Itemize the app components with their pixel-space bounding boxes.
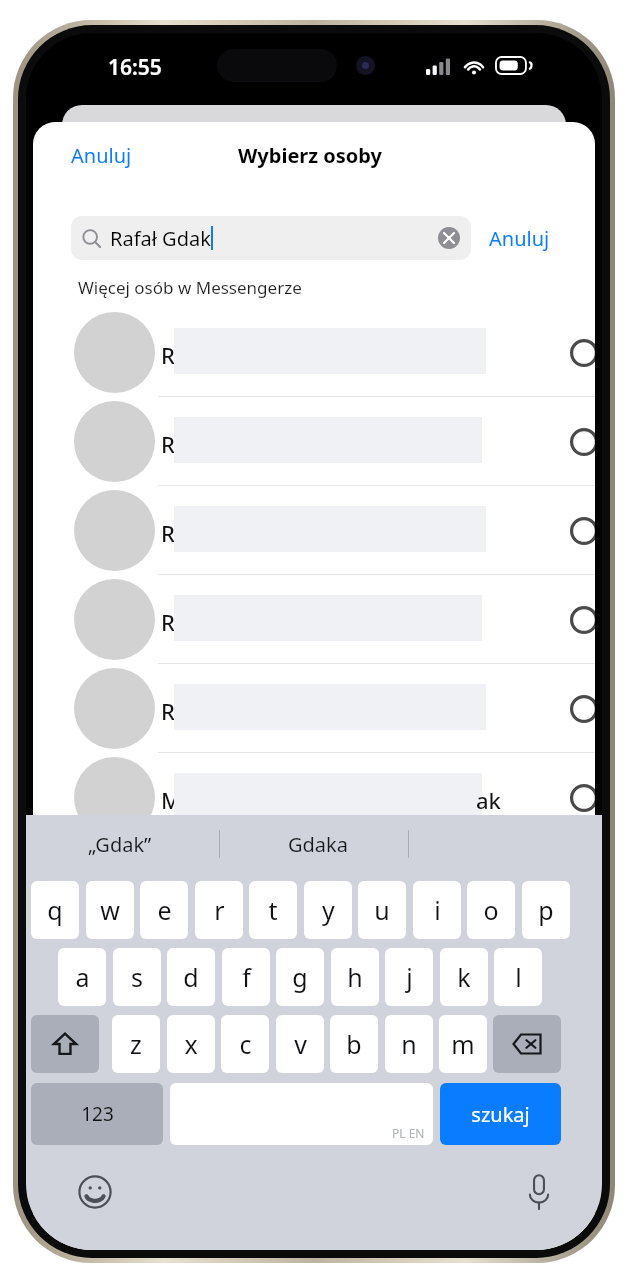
staticText: g (292, 960, 308, 994)
button[interactable]: k (440, 948, 488, 1006)
button[interactable]: e (140, 881, 188, 939)
staticText: k (457, 960, 471, 994)
staticText: R (161, 607, 175, 637)
button[interactable]: Wyczyść (438, 227, 460, 249)
staticText: a (75, 960, 90, 994)
staticText: i (434, 893, 441, 927)
staticText: m (451, 1027, 475, 1061)
staticText: t (268, 893, 278, 927)
button[interactable]: g (276, 948, 324, 1006)
button[interactable]: a (58, 948, 106, 1006)
button[interactable]: h (331, 948, 379, 1006)
button[interactable]: s (113, 948, 161, 1006)
staticText: s (131, 960, 143, 994)
staticText: Anuluj (489, 225, 550, 252)
staticText: b (346, 1027, 362, 1061)
button[interactable]: szukaj (440, 1083, 561, 1145)
staticText: 16:55 (108, 53, 162, 82)
staticText: Wybierz osoby (238, 142, 383, 169)
button[interactable]: Anuluj (67, 136, 136, 175)
button[interactable]: Spacja (170, 1083, 433, 1145)
staticText: q (47, 893, 63, 927)
button[interactable]: o (467, 881, 515, 939)
staticText: R (161, 518, 175, 548)
button[interactable]: w (86, 881, 134, 939)
staticText: 123 (81, 1101, 114, 1127)
button[interactable]: i (413, 881, 461, 939)
staticText: e (157, 893, 172, 927)
button[interactable]: l (494, 948, 542, 1006)
other: Zaznacz (570, 428, 595, 456)
staticText: y (322, 893, 335, 927)
staticText: „Gdak” (88, 831, 152, 858)
staticText: w (100, 893, 120, 927)
staticText: l (515, 960, 522, 994)
button[interactable]: t (249, 881, 297, 939)
staticText: o (483, 893, 499, 927)
staticText: c (239, 1027, 252, 1061)
button[interactable]: d (167, 948, 215, 1006)
other: Zaznacz (570, 517, 595, 545)
button[interactable]: Dyktowanie (526, 1173, 552, 1211)
staticText: d (183, 960, 199, 994)
button[interactable]: R (33, 486, 595, 575)
button[interactable]: R (33, 575, 595, 664)
staticText: n (401, 1027, 417, 1061)
staticText: Więcej osób w Messengerze (78, 276, 302, 299)
staticText: szukaj (471, 1101, 530, 1128)
button[interactable]: Emoji (78, 1175, 112, 1209)
button[interactable]: j (385, 948, 433, 1006)
button[interactable]: R (33, 397, 595, 486)
staticText: ak (476, 785, 501, 815)
staticText: f (242, 960, 251, 994)
staticText: z (130, 1027, 142, 1061)
button[interactable]: x (167, 1015, 215, 1073)
staticText: R (161, 340, 175, 370)
staticText: R (161, 429, 175, 459)
button[interactable]: M (33, 753, 595, 842)
button[interactable]: u (358, 881, 406, 939)
staticText: j (406, 960, 413, 994)
staticText: R (161, 696, 175, 726)
button[interactable]: Rafał Gdak (71, 216, 471, 260)
button[interactable]: 123 (31, 1083, 163, 1145)
button[interactable]: Shift (31, 1015, 99, 1073)
staticText: M (161, 785, 182, 815)
other: Zaznacz (570, 695, 595, 723)
staticText: h (347, 960, 363, 994)
button[interactable]: y (304, 881, 352, 939)
button[interactable]: f (222, 948, 270, 1006)
other: Zaznacz (570, 339, 595, 367)
other: Zaznacz (570, 606, 595, 634)
button[interactable]: q (31, 881, 79, 939)
button[interactable]: Anuluj (483, 217, 556, 260)
button[interactable]: n (385, 1015, 433, 1073)
staticText: Rafał Gdak (110, 225, 211, 252)
staticText: v (294, 1027, 307, 1061)
staticText: x (184, 1027, 198, 1061)
staticText: PL EN (392, 1125, 425, 1141)
button[interactable]: Backspace (493, 1015, 561, 1073)
other: Zaznacz (570, 784, 595, 812)
button[interactable]: v (276, 1015, 324, 1073)
staticText: Anuluj (71, 142, 132, 169)
staticText: u (374, 893, 390, 927)
button[interactable]: b (330, 1015, 378, 1073)
button[interactable]: m (439, 1015, 487, 1073)
staticText: r (214, 893, 225, 927)
staticText: p (538, 893, 554, 927)
button[interactable]: R (33, 308, 595, 397)
button[interactable]: p (522, 881, 570, 939)
button[interactable]: r (195, 881, 243, 939)
staticText: Gdaka (288, 831, 348, 858)
button[interactable]: c (221, 1015, 269, 1073)
button[interactable]: R (33, 664, 595, 753)
button[interactable]: z (112, 1015, 160, 1073)
